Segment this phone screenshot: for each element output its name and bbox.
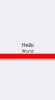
staticText: Hello (21, 41, 33, 48)
staticText: World (22, 48, 33, 54)
